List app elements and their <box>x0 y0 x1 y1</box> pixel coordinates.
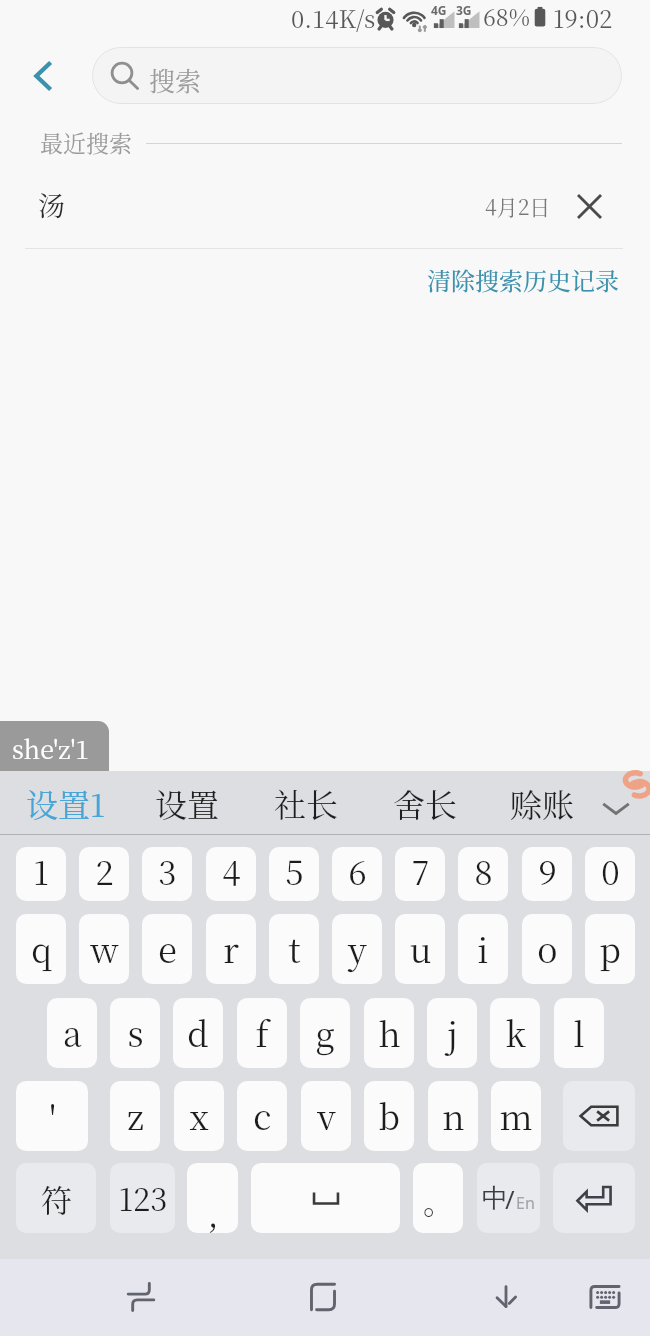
button[interactable]: ' <box>16 1081 88 1151</box>
button[interactable]: 清除搜索历史记录 <box>425 259 620 299</box>
staticText: p <box>599 924 621 973</box>
button[interactable]: 1 <box>16 847 66 901</box>
button[interactable]: 舍长 <box>382 771 468 834</box>
button[interactable]: 搜索 <box>92 47 622 104</box>
button[interactable]: l <box>554 998 604 1068</box>
staticText: , <box>207 1188 219 1233</box>
staticText: n <box>442 1091 465 1140</box>
button[interactable]: i <box>458 914 508 984</box>
button[interactable]: she'z'1 <box>0 721 109 771</box>
button[interactable]: 123 <box>110 1163 175 1233</box>
button[interactable]: 0 <box>585 847 635 901</box>
button[interactable]: 7 <box>395 847 445 901</box>
staticText: 123 <box>118 1175 168 1220</box>
button[interactable]: Expand candidates <box>594 785 638 829</box>
staticText: t <box>288 924 301 973</box>
button[interactable]: Back <box>481 1272 531 1322</box>
staticText: 清除搜索历史记录 <box>427 262 619 296</box>
staticText: 中 <box>482 1182 508 1215</box>
button[interactable]: b <box>364 1081 414 1151</box>
button[interactable]: u <box>395 914 445 984</box>
staticText: s <box>127 1008 144 1057</box>
button[interactable]: Back <box>20 53 66 99</box>
button[interactable]: d <box>173 998 223 1068</box>
staticText: 汤 <box>38 185 65 224</box>
staticText: z <box>127 1091 144 1140</box>
staticText: a <box>63 1008 82 1057</box>
button[interactable]: o <box>522 914 572 984</box>
button[interactable]: s <box>110 998 160 1068</box>
button[interactable]: 。 <box>413 1163 463 1233</box>
staticText: d <box>187 1008 209 1057</box>
button[interactable]: , <box>187 1163 238 1233</box>
button[interactable]: 5 <box>269 847 319 901</box>
button[interactable]: Space <box>251 1163 400 1233</box>
button[interactable]: Switch language <box>477 1163 540 1233</box>
button[interactable]: Delete history item <box>571 188 607 224</box>
staticText: 2 <box>95 847 114 894</box>
staticText: ' <box>49 1092 56 1141</box>
button[interactable]: z <box>110 1081 160 1151</box>
button[interactable]: 设置 <box>144 771 230 834</box>
staticText: 。 <box>423 1178 454 1223</box>
button[interactable]: 4 <box>206 847 256 901</box>
button[interactable]: 设置1 <box>21 771 111 834</box>
staticText: 舍长 <box>393 780 458 826</box>
button[interactable]: n <box>428 1081 478 1151</box>
button[interactable]: v <box>301 1081 351 1151</box>
staticText: 符 <box>41 1176 72 1221</box>
button[interactable]: 3 <box>142 847 192 901</box>
staticText: x <box>189 1091 209 1140</box>
staticText: m <box>499 1091 533 1140</box>
button[interactable]: t <box>269 914 319 984</box>
button[interactable]: Backspace <box>563 1081 635 1151</box>
button[interactable]: h <box>364 998 414 1068</box>
button[interactable]: e <box>142 914 192 984</box>
staticText: y <box>348 924 367 973</box>
button[interactable]: r <box>206 914 256 984</box>
button[interactable]: 汤 <box>0 174 650 249</box>
button[interactable]: Enter <box>553 1163 635 1233</box>
staticText: o <box>537 924 558 973</box>
button[interactable]: 赊账 <box>499 771 585 834</box>
staticText: h <box>378 1008 401 1057</box>
button[interactable]: 9 <box>522 847 572 901</box>
staticText: k <box>505 1008 526 1057</box>
button[interactable]: q <box>16 914 66 984</box>
button[interactable]: x <box>174 1081 224 1151</box>
button[interactable]: p <box>585 914 635 984</box>
staticText: 9 <box>538 847 557 894</box>
staticText: j <box>447 1008 458 1057</box>
button[interactable]: c <box>237 1081 287 1151</box>
button[interactable]: g <box>300 998 350 1068</box>
staticText: w <box>90 924 119 973</box>
button[interactable]: f <box>237 998 287 1068</box>
staticText: g <box>315 1008 335 1057</box>
button[interactable]: Recent apps <box>116 1272 166 1322</box>
staticText: 4 <box>222 847 241 894</box>
button[interactable]: y <box>332 914 382 984</box>
staticText: b <box>378 1091 400 1140</box>
button[interactable]: j <box>427 998 477 1068</box>
button[interactable]: a <box>47 998 97 1068</box>
button[interactable]: 8 <box>458 847 508 901</box>
staticText: v <box>317 1091 336 1140</box>
button[interactable]: m <box>491 1081 541 1151</box>
staticText: l <box>573 1008 585 1057</box>
button[interactable]: 2 <box>79 847 129 901</box>
staticText: 3G <box>456 2 472 18</box>
staticText: 5 <box>285 847 304 894</box>
button[interactable]: 6 <box>332 847 382 901</box>
staticText: f <box>255 1008 269 1057</box>
button[interactable]: 符 <box>16 1163 96 1233</box>
staticText: 4G <box>431 2 447 18</box>
button[interactable]: Home <box>298 1272 348 1322</box>
staticText: 68% <box>483 0 530 33</box>
staticText: 8 <box>474 847 493 894</box>
button[interactable]: w <box>79 914 129 984</box>
staticText: 赊账 <box>510 780 575 826</box>
button[interactable]: k <box>490 998 540 1068</box>
button[interactable]: 社长 <box>263 771 349 834</box>
button[interactable]: Hide keyboard <box>580 1272 630 1322</box>
staticText: 1 <box>33 847 49 894</box>
